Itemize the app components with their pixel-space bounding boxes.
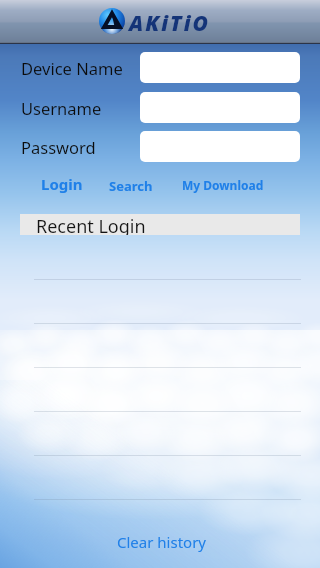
button[interactable]: [0, 499, 320, 543]
button[interactable]: [140, 131, 300, 162]
staticText: AKiTiO: [129, 9, 210, 38]
button[interactable]: [0, 367, 320, 411]
staticText: Device Name: [21, 57, 123, 79]
staticText: Password: [21, 136, 96, 158]
staticText: Recent Login: [36, 214, 146, 235]
button[interactable]: My Download: [182, 177, 264, 193]
staticText: Search: [109, 177, 153, 195]
button[interactable]: Search: [109, 177, 153, 195]
button[interactable]: Recent Login: [20, 214, 300, 235]
button[interactable]: [0, 279, 320, 323]
staticText: Clear history: [117, 532, 206, 552]
staticText: Username: [21, 97, 102, 119]
button[interactable]: [140, 52, 300, 83]
staticText: My Download: [182, 177, 264, 193]
button[interactable]: [0, 455, 320, 499]
button[interactable]: Login: [41, 174, 83, 194]
button[interactable]: [0, 411, 320, 455]
staticText: Login: [41, 174, 83, 194]
button[interactable]: [140, 92, 300, 123]
button[interactable]: [0, 323, 320, 367]
button[interactable]: Clear history: [117, 532, 206, 552]
